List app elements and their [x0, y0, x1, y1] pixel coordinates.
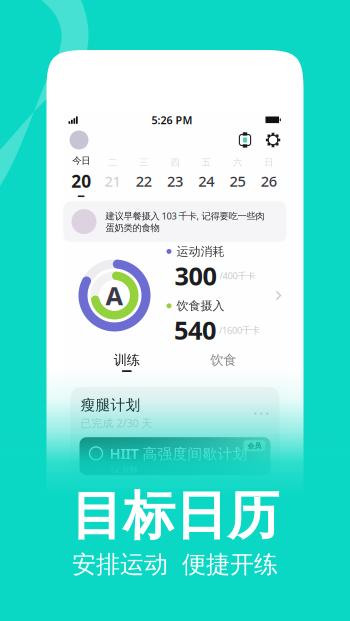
- staticText: 饮食: [210, 352, 236, 368]
- staticText: 训练: [114, 352, 140, 368]
- button[interactable]: More: [253, 407, 269, 419]
- button[interactable]: Profile: [69, 130, 88, 149]
- staticText: 21: [104, 171, 120, 191]
- button[interactable]: Tab: [242, 490, 287, 512]
- staticText: ■: [127, 505, 133, 512]
- staticText: 四: [170, 157, 179, 168]
- button[interactable]: 五: [191, 155, 222, 198]
- staticText: 运动消耗: [176, 244, 224, 259]
- button[interactable]: Tab: [152, 490, 197, 512]
- button[interactable]: Tab: [62, 490, 107, 512]
- button[interactable]: 日: [253, 155, 284, 198]
- staticText: 安排运动 便捷开练: [72, 550, 278, 579]
- button[interactable]: 三: [128, 155, 159, 198]
- staticText: 三: [139, 157, 148, 168]
- staticText: ■: [217, 505, 223, 512]
- staticText: 5:26 PM: [151, 113, 192, 127]
- button[interactable]: 饮食: [191, 347, 255, 377]
- button[interactable]: Tab: [107, 490, 152, 512]
- staticText: /400千卡: [219, 269, 255, 282]
- staticText: 12 分钟: [109, 464, 137, 475]
- staticText: 目标日历: [71, 484, 279, 548]
- button[interactable]: A: [62, 244, 287, 347]
- staticText: 二: [108, 157, 117, 168]
- staticText: 饮食摄入: [176, 298, 224, 313]
- staticText: 300: [174, 259, 216, 292]
- button[interactable]: 建议早餐摄入 103 千卡, 记得要吃一些肉蛋奶类的食物: [62, 201, 287, 242]
- button[interactable]: 训练: [95, 347, 159, 377]
- staticText: 日: [264, 157, 273, 168]
- staticText: 23: [167, 171, 183, 191]
- staticText: 20: [71, 169, 91, 192]
- staticText: ■: [82, 505, 88, 512]
- staticText: ■: [262, 505, 268, 512]
- staticText: 22: [136, 171, 152, 191]
- staticText: 540: [174, 313, 216, 347]
- staticText: ■: [172, 505, 178, 512]
- staticText: HIIT 高强度间歇计划: [109, 444, 247, 463]
- button[interactable]: Settings: [265, 132, 280, 147]
- staticText: • • •: [253, 407, 269, 419]
- staticText: 瘦腿计划: [80, 396, 140, 414]
- button[interactable]: 会员: [70, 437, 279, 475]
- staticText: 今日: [72, 155, 90, 166]
- staticText: 五: [202, 157, 211, 168]
- staticText: A: [105, 279, 123, 312]
- staticText: 24: [198, 171, 214, 191]
- button[interactable]: Tab: [197, 490, 242, 512]
- button[interactable]: Watch: [238, 132, 251, 148]
- button[interactable]: 今日: [65, 153, 97, 200]
- staticText: 25: [230, 171, 246, 191]
- button[interactable]: 二: [97, 155, 128, 198]
- staticText: /1600千卡: [219, 324, 260, 336]
- button[interactable]: 六: [222, 155, 253, 198]
- staticText: 六: [233, 157, 242, 168]
- staticText: 会员: [247, 442, 261, 450]
- staticText: 已完成 2/30 天: [80, 416, 152, 430]
- staticText: 建议早餐摄入 103 千卡, 记得要吃一些肉蛋奶类的食物: [105, 210, 264, 234]
- staticText: 26: [261, 171, 277, 191]
- button[interactable]: 四: [159, 155, 191, 198]
